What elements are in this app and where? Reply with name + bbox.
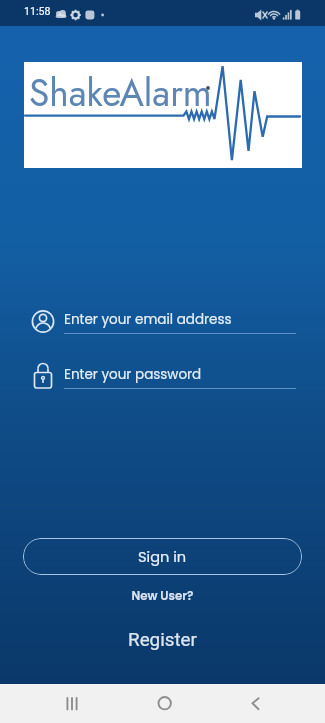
button[interactable]: Home xyxy=(109,684,217,723)
button[interactable]: Recent apps xyxy=(0,684,109,723)
button[interactable]: Back xyxy=(217,684,325,723)
button[interactable]: Register xyxy=(0,629,325,651)
staticText: Enter your email address xyxy=(64,310,232,329)
staticText: 11:58 xyxy=(24,5,51,17)
button[interactable]: New User? xyxy=(0,588,325,605)
button[interactable]: Enter your password xyxy=(0,360,325,396)
staticText: ShakeAlarm xyxy=(29,66,212,119)
staticText: Sign in xyxy=(138,547,187,567)
button[interactable]: Sign in xyxy=(23,538,302,575)
button[interactable]: Enter your email address xyxy=(0,305,325,341)
staticText: Enter your password xyxy=(64,365,202,384)
